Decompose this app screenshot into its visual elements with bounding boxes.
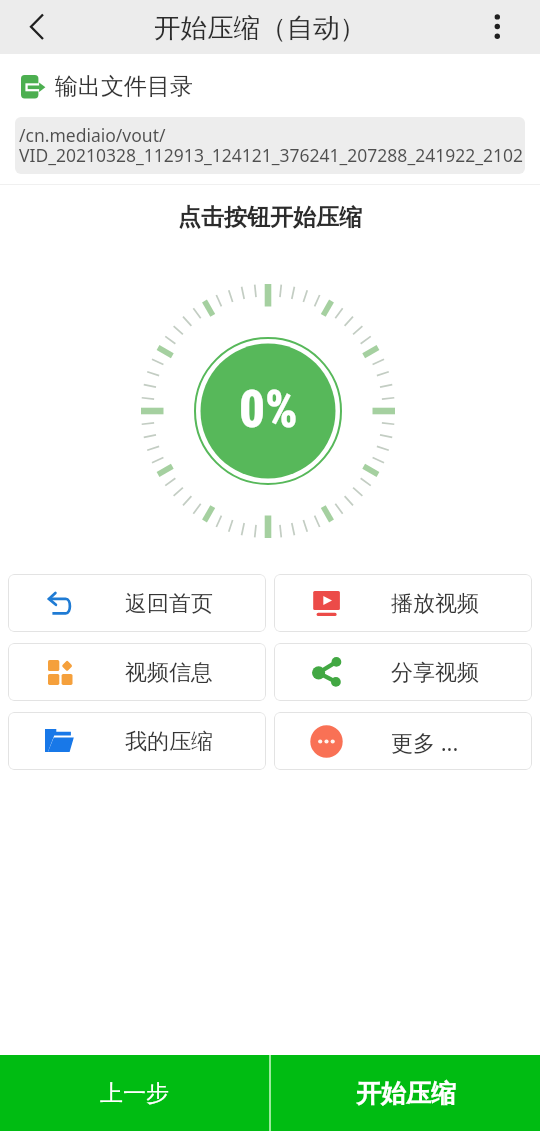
staticText: 输出文件目录 (55, 72, 193, 101)
button[interactable]: Back (0, 0, 54, 54)
staticText: 上一步 (100, 1079, 169, 1108)
staticText: 更多 ... (391, 727, 459, 757)
staticText: 开始压缩（自动） (154, 11, 366, 44)
button[interactable]: 我的压缩 (8, 712, 266, 770)
staticText: 播放视频 (391, 590, 479, 618)
staticText: 分享视频 (391, 659, 479, 687)
staticText: /cn.mediaio/vout/ (19, 123, 166, 147)
button[interactable]: 输出文件目录 (0, 72, 540, 101)
staticText: VID_20210328_112913_124121_376241_207288… (19, 143, 524, 167)
button[interactable]: 返回首页 (8, 574, 266, 632)
button[interactable]: 开始压缩 (271, 1055, 540, 1131)
button[interactable]: 分享视频 (274, 643, 532, 701)
staticText: 点击按钮开始压缩 (0, 203, 540, 232)
button[interactable]: 视频信息 (8, 643, 266, 701)
staticText: 返回首页 (125, 590, 213, 618)
staticText: 我的压缩 (125, 728, 213, 756)
button[interactable]: 更多 ... (274, 712, 532, 770)
button[interactable]: 播放视频 (274, 574, 532, 632)
staticText: 视频信息 (125, 659, 213, 687)
button[interactable]: More options (470, 0, 524, 54)
button[interactable]: 上一步 (0, 1055, 269, 1131)
staticText: 0% (239, 380, 298, 440)
staticText: 开始压缩 (356, 1078, 456, 1109)
